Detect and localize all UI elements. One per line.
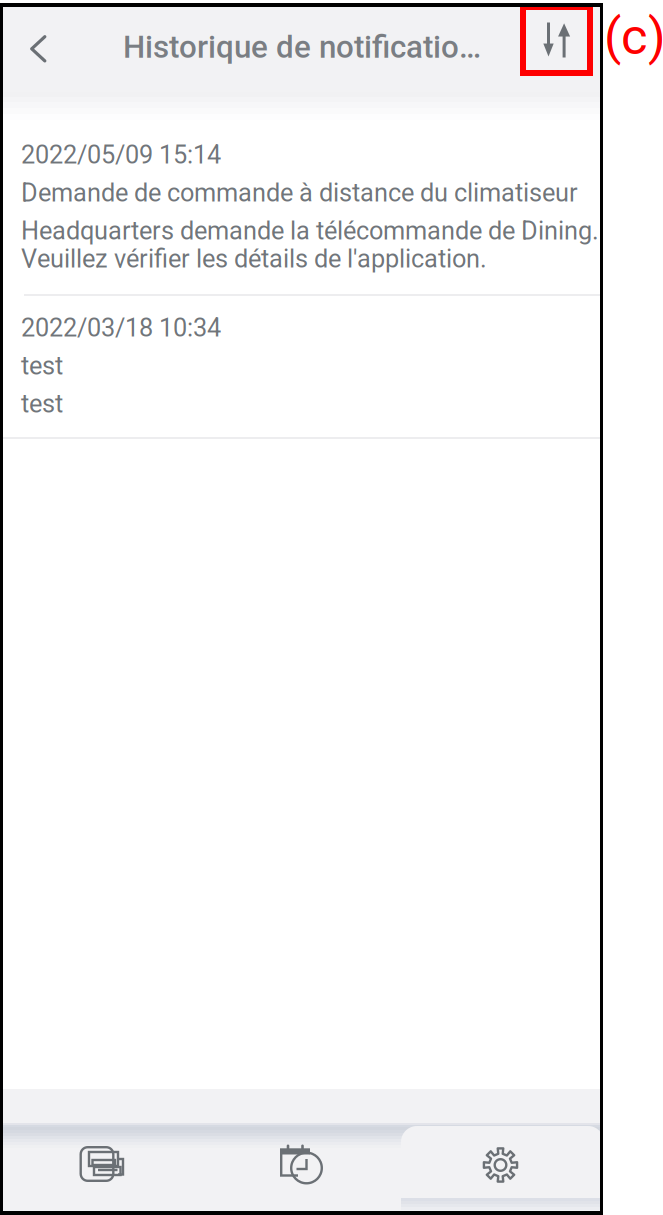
staticText: Historique de notificatio… (123, 29, 481, 65)
button[interactable]: Devices (3, 1122, 202, 1208)
button[interactable]: Settings (401, 1122, 600, 1208)
button[interactable]: History (202, 1122, 401, 1208)
staticText: Veuillez vérifier les détails de l'appli… (21, 244, 487, 274)
staticText: test (21, 351, 63, 381)
staticText: test (21, 389, 63, 419)
staticText: (c) (604, 7, 663, 66)
staticText: 2022/03/18 10:34 (21, 313, 221, 343)
button[interactable]: Notification 2022/03/18 10:34 (3, 284, 600, 425)
staticText: Headquarters demande la télécommande de … (21, 216, 599, 246)
button[interactable]: Sort (520, 4, 593, 76)
staticText: 2022/05/09 15:14 (21, 140, 221, 170)
button[interactable]: Back (8, 6, 68, 92)
staticText: Demande de commande à distance du climat… (21, 178, 578, 208)
button[interactable]: Notification 2022/05/09 15:14 (3, 105, 600, 294)
